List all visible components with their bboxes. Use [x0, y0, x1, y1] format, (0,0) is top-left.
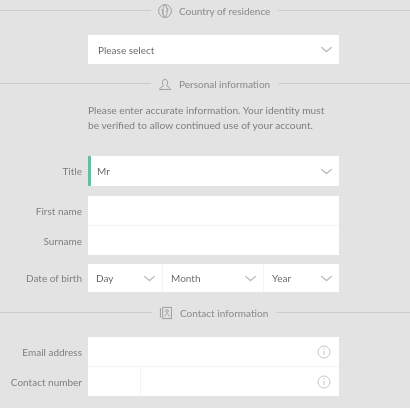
staticText: Email address	[22, 346, 82, 358]
button[interactable]: Year	[264, 264, 339, 292]
other: Contact number information	[317, 375, 331, 389]
button[interactable]: Please select	[88, 35, 339, 64]
other: Email address information	[317, 345, 331, 359]
staticText: Month	[171, 272, 201, 284]
button[interactable]: Email address information	[88, 337, 339, 366]
button[interactable]: Month	[163, 264, 263, 292]
staticText: Contact number	[10, 376, 82, 388]
staticText: Day	[96, 272, 114, 284]
button[interactable]: Mr	[91, 156, 339, 186]
button[interactable]: Day	[88, 264, 162, 292]
button[interactable]: Contact number information	[141, 367, 339, 396]
staticText: Title	[62, 165, 82, 177]
staticText: Contact information	[180, 307, 269, 319]
staticText: Year	[272, 272, 292, 284]
staticText: Country of residence	[179, 5, 271, 17]
staticText: Please select	[98, 44, 155, 56]
staticText: Date of birth	[25, 272, 82, 284]
staticText: Personal information	[179, 78, 271, 90]
staticText: Mr	[97, 165, 110, 177]
staticText: Surname	[43, 235, 82, 247]
staticText: First name	[35, 205, 82, 217]
staticText: Please enter accurate information. Your …	[88, 104, 333, 131]
